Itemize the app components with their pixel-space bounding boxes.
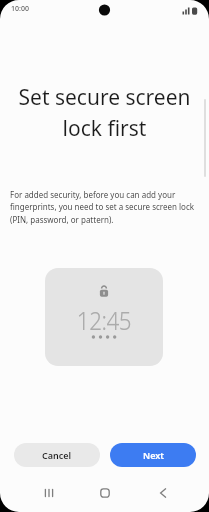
button[interactable]: Next <box>110 443 196 467</box>
staticText: 10:00 <box>11 4 29 14</box>
button[interactable] <box>139 478 209 508</box>
staticText: Cancel <box>42 449 72 461</box>
staticText: Next <box>143 449 164 461</box>
staticText: Set secure screen lock first <box>0 83 209 142</box>
button[interactable]: Cancel <box>14 443 100 467</box>
staticText: 12:45 <box>53 302 155 337</box>
button[interactable] <box>0 478 69 508</box>
staticText: For added security, before you can add y… <box>10 189 195 225</box>
button[interactable] <box>69 478 139 508</box>
